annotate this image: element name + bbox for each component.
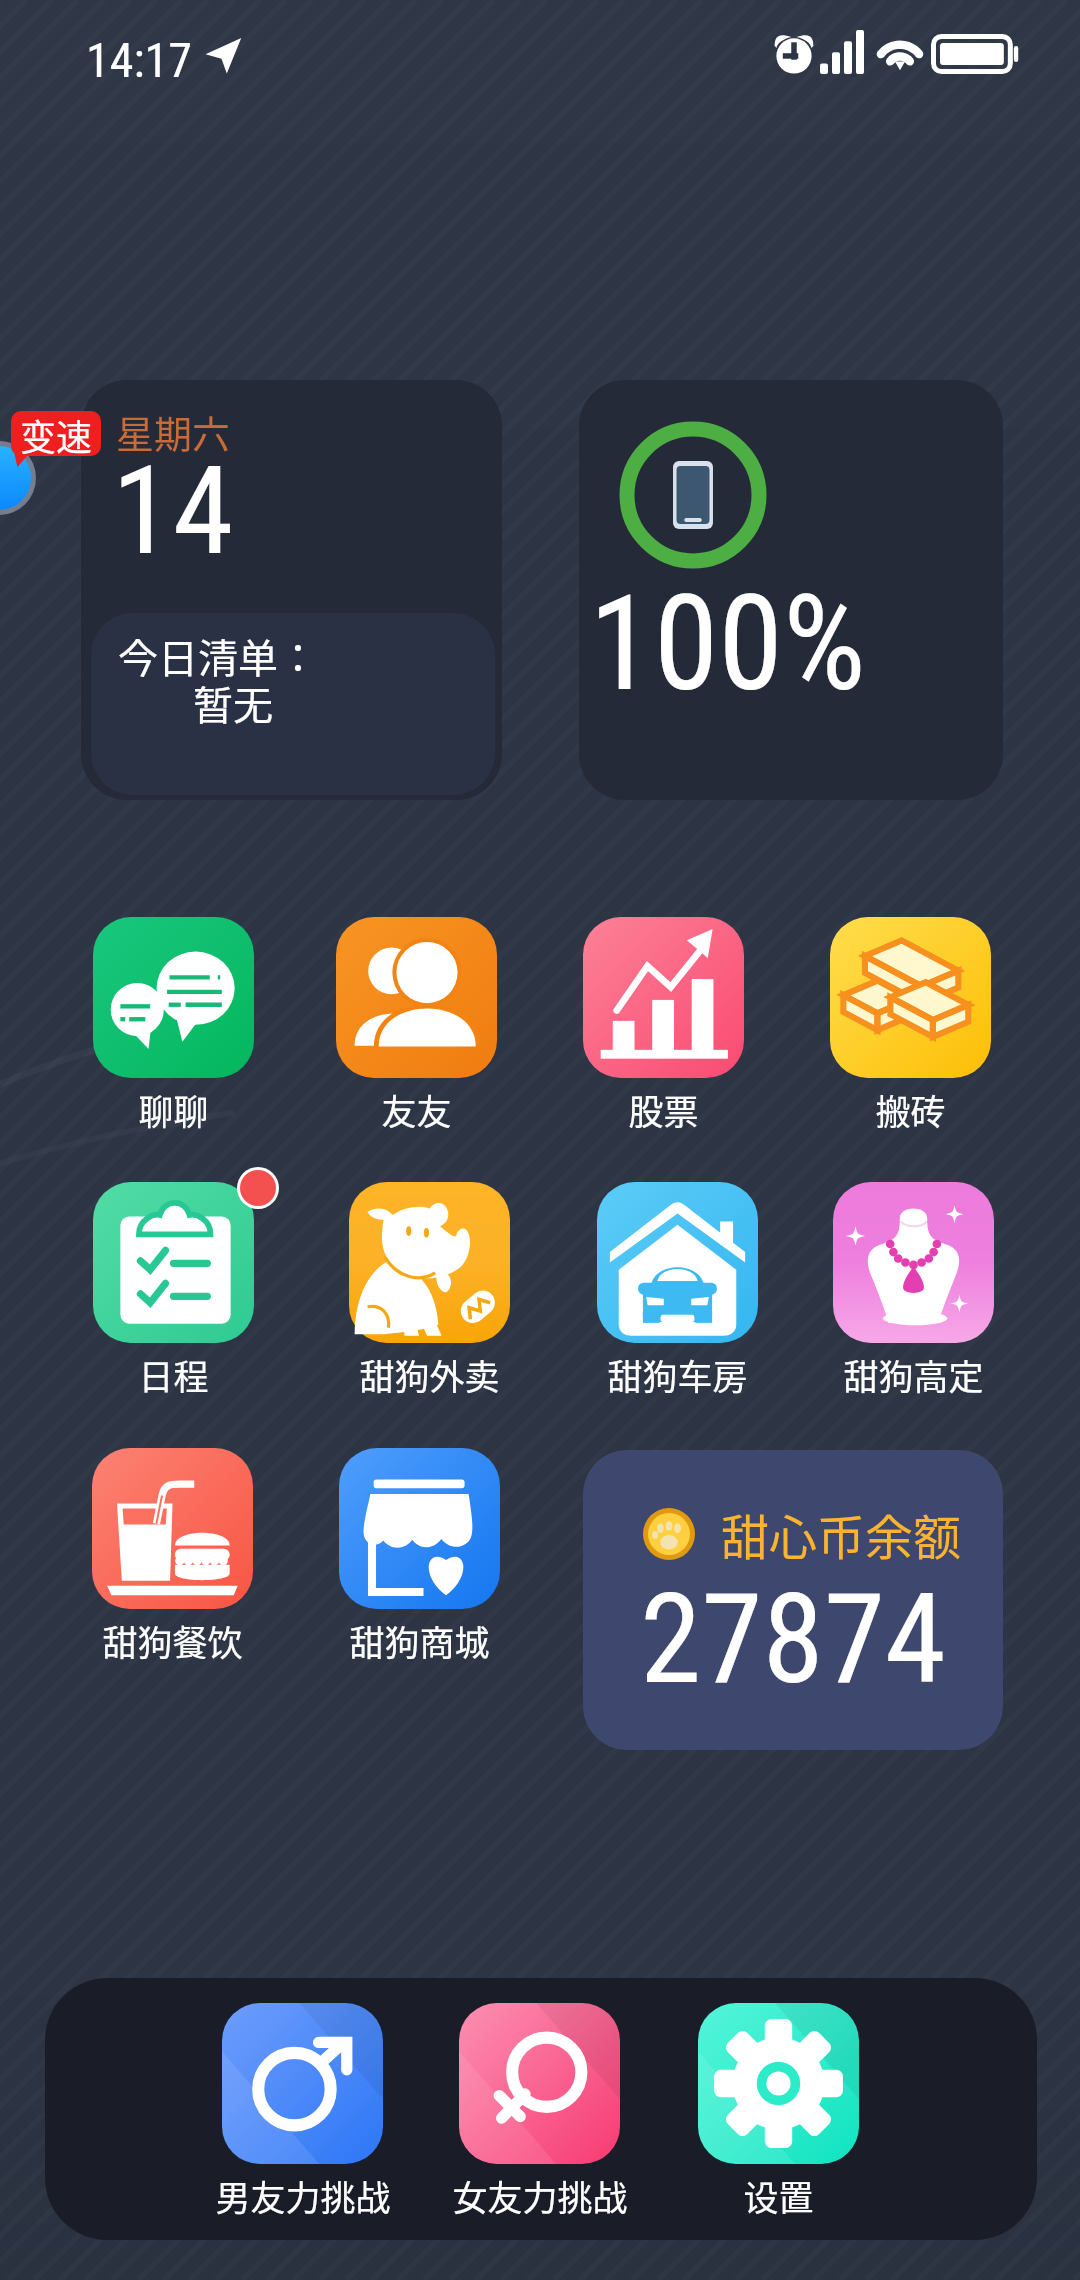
staticText: 搬砖 xyxy=(875,1084,946,1135)
staticText: 今日清单： xyxy=(118,627,318,685)
button[interactable]: 甜狗商城 xyxy=(314,1448,525,1666)
button[interactable]: 友友 xyxy=(311,917,522,1135)
staticText: 聊聊 xyxy=(138,1084,209,1135)
staticText: 100% xyxy=(589,567,866,721)
button[interactable]: 甜心币余额 xyxy=(583,1450,1003,1750)
button[interactable]: 甜狗车房 xyxy=(572,1182,783,1400)
button[interactable]: 甜狗餐饮 xyxy=(67,1448,278,1666)
button[interactable]: 男友力挑战 xyxy=(197,2003,408,2221)
staticText: 变速 xyxy=(20,411,93,454)
button[interactable]: 甜狗高定 xyxy=(808,1182,1019,1400)
staticText: 甜狗餐饮 xyxy=(102,1615,243,1666)
button[interactable]: 女友力挑战 xyxy=(434,2003,645,2221)
staticText: 股票 xyxy=(628,1084,699,1135)
staticText: 男友力挑战 xyxy=(215,2170,391,2221)
staticText: 女友力挑战 xyxy=(452,2170,628,2221)
staticText: 友友 xyxy=(381,1084,452,1135)
button[interactable]: 股票 xyxy=(558,917,769,1135)
button[interactable]: 聊聊 xyxy=(68,917,279,1135)
button[interactable]: 100% xyxy=(579,380,1003,800)
button[interactable]: 搬砖 xyxy=(805,917,1016,1135)
staticText: 14 xyxy=(112,439,234,583)
staticText: 甜狗外卖 xyxy=(359,1349,500,1400)
staticText: 暂无 xyxy=(193,674,273,732)
staticText: 甜狗车房 xyxy=(607,1349,748,1400)
staticText: 甜狗高定 xyxy=(843,1349,984,1400)
button[interactable]: 日程 xyxy=(68,1182,279,1400)
staticText: 日程 xyxy=(138,1349,209,1400)
other: Location xyxy=(204,36,242,74)
staticText: 甜心币余额 xyxy=(721,1499,962,1569)
button[interactable]: 星期六 xyxy=(81,380,502,800)
other: Assistant xyxy=(0,441,36,515)
staticText: 14:17 xyxy=(86,32,192,88)
staticText: 27874 xyxy=(640,1567,947,1712)
staticText: 设置 xyxy=(743,2170,814,2221)
staticText: 星期六 xyxy=(116,404,231,459)
staticText: 甜狗商城 xyxy=(349,1615,490,1666)
button[interactable]: 甜狗外卖 xyxy=(324,1182,535,1400)
button[interactable]: 设置 xyxy=(673,2003,884,2221)
